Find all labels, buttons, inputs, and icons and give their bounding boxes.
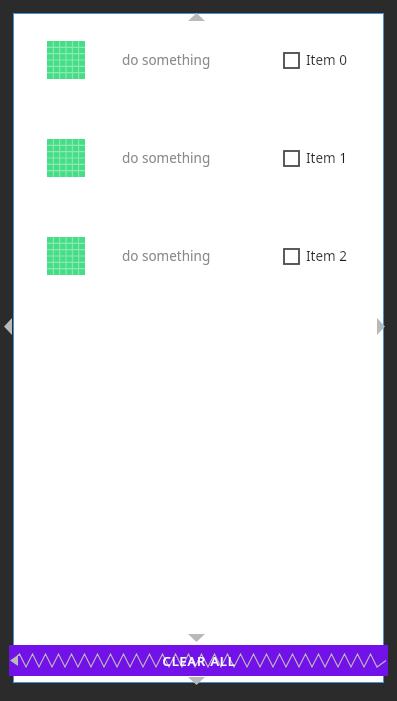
button[interactable]: do something [14,237,383,275]
button[interactable]: Item 2 [284,247,347,265]
staticText: do something [122,247,211,265]
staticText: Item 1 [306,149,347,167]
staticText: do something [122,149,211,167]
staticText: do something [122,51,211,69]
staticText: Item 2 [306,247,347,265]
button[interactable]: CLEAR ALL [9,645,388,676]
button[interactable]: do something [14,139,383,177]
button[interactable]: do something [14,41,383,79]
staticText: CLEAR ALL [162,652,236,670]
button[interactable]: Item 1 [284,149,347,167]
button[interactable]: Item 0 [284,51,347,69]
staticText: Item 0 [306,51,347,69]
